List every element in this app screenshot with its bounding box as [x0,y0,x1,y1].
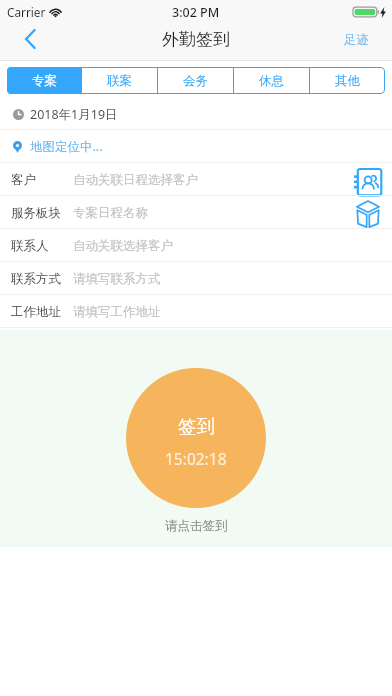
button[interactable]: 专案 [7,67,81,94]
staticText: 联系人 [11,238,49,254]
button[interactable]: 选择客户 [353,163,383,196]
staticText: 工作地址 [11,304,61,320]
staticText: 服务板块 [11,205,61,221]
staticText: 请填写联系方式 [73,271,161,287]
staticText: 地图定位中... [30,138,103,155]
staticText: 专案 [32,73,57,89]
staticText: 其他 [335,73,360,89]
staticText: 客户 [11,172,36,188]
staticText: 签到 [178,415,215,438]
staticText: 请点击签到 [165,518,228,534]
button[interactable]: 休息 [234,67,309,94]
staticText: 专案日程名称 [73,205,148,221]
button[interactable]: 联系人 [0,229,392,262]
staticText: 3:02 PM [172,4,220,21]
staticText: 自动关联选择客户 [73,238,173,254]
staticText: 2018年1月19日 [30,106,118,123]
button[interactable]: 联案 [82,67,157,94]
button[interactable]: Back [13,22,47,56]
button[interactable]: 客户 [0,163,392,196]
button[interactable]: 其他 [310,67,385,94]
button[interactable]: 工作地址 [0,295,392,328]
button[interactable]: 联系方式 [0,262,392,295]
staticText: 足迹 [344,32,369,48]
button[interactable]: 会务 [158,67,233,94]
button[interactable]: 签到 [126,368,266,508]
staticText: 联系方式 [11,271,61,287]
staticText: 外勤签到 [162,29,230,50]
button[interactable]: 足迹 [344,29,369,51]
staticText: 会务 [183,73,208,89]
staticText: 15:02:18 [165,448,227,469]
staticText: Carrier [7,4,46,20]
staticText: 请填写工作地址 [73,304,161,320]
button[interactable]: 服务板块 [0,196,392,229]
button[interactable]: 选择服务板块 [353,196,383,229]
staticText: 联案 [107,73,132,89]
staticText: 休息 [259,73,284,89]
staticText: 自动关联日程选择客户 [73,172,198,188]
